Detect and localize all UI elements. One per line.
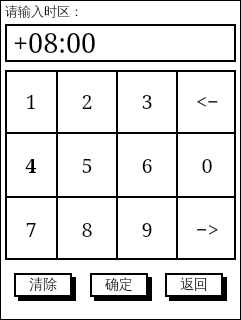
button[interactable]: 确定 (90, 273, 148, 297)
staticText: 3 (141, 88, 153, 115)
button[interactable]: 5 (58, 134, 116, 196)
staticText: −> (196, 216, 219, 243)
button[interactable]: 9 (118, 198, 176, 260)
button[interactable]: 2 (58, 70, 116, 132)
staticText: 1 (25, 88, 37, 115)
staticText: 7 (25, 216, 37, 243)
staticText: 0 (201, 152, 213, 179)
button[interactable]: Next (178, 198, 236, 260)
button[interactable]: 1 (5, 70, 56, 132)
staticText: 确定 (105, 276, 133, 294)
staticText: 2 (81, 88, 93, 115)
staticText: 请输入时区： (5, 3, 83, 19)
button[interactable]: 6 (118, 134, 176, 196)
staticText: 6 (141, 152, 153, 179)
staticText: 清除 (29, 276, 57, 294)
button[interactable]: 7 (5, 198, 56, 260)
staticText: 9 (141, 216, 153, 243)
button[interactable]: 0 (178, 134, 236, 196)
button[interactable]: 返回 (165, 273, 223, 297)
button[interactable]: 3 (118, 70, 176, 132)
staticText: 5 (81, 152, 93, 179)
staticText: 8 (81, 216, 93, 243)
staticText: <− (196, 88, 219, 115)
staticText: +08:00 (13, 24, 97, 60)
button[interactable]: 8 (58, 198, 116, 260)
button[interactable]: Backspace (178, 70, 236, 132)
button[interactable]: 4 (5, 134, 56, 196)
staticText: 返回 (180, 276, 208, 294)
button[interactable]: 清除 (14, 273, 72, 297)
staticText: 4 (25, 152, 37, 179)
